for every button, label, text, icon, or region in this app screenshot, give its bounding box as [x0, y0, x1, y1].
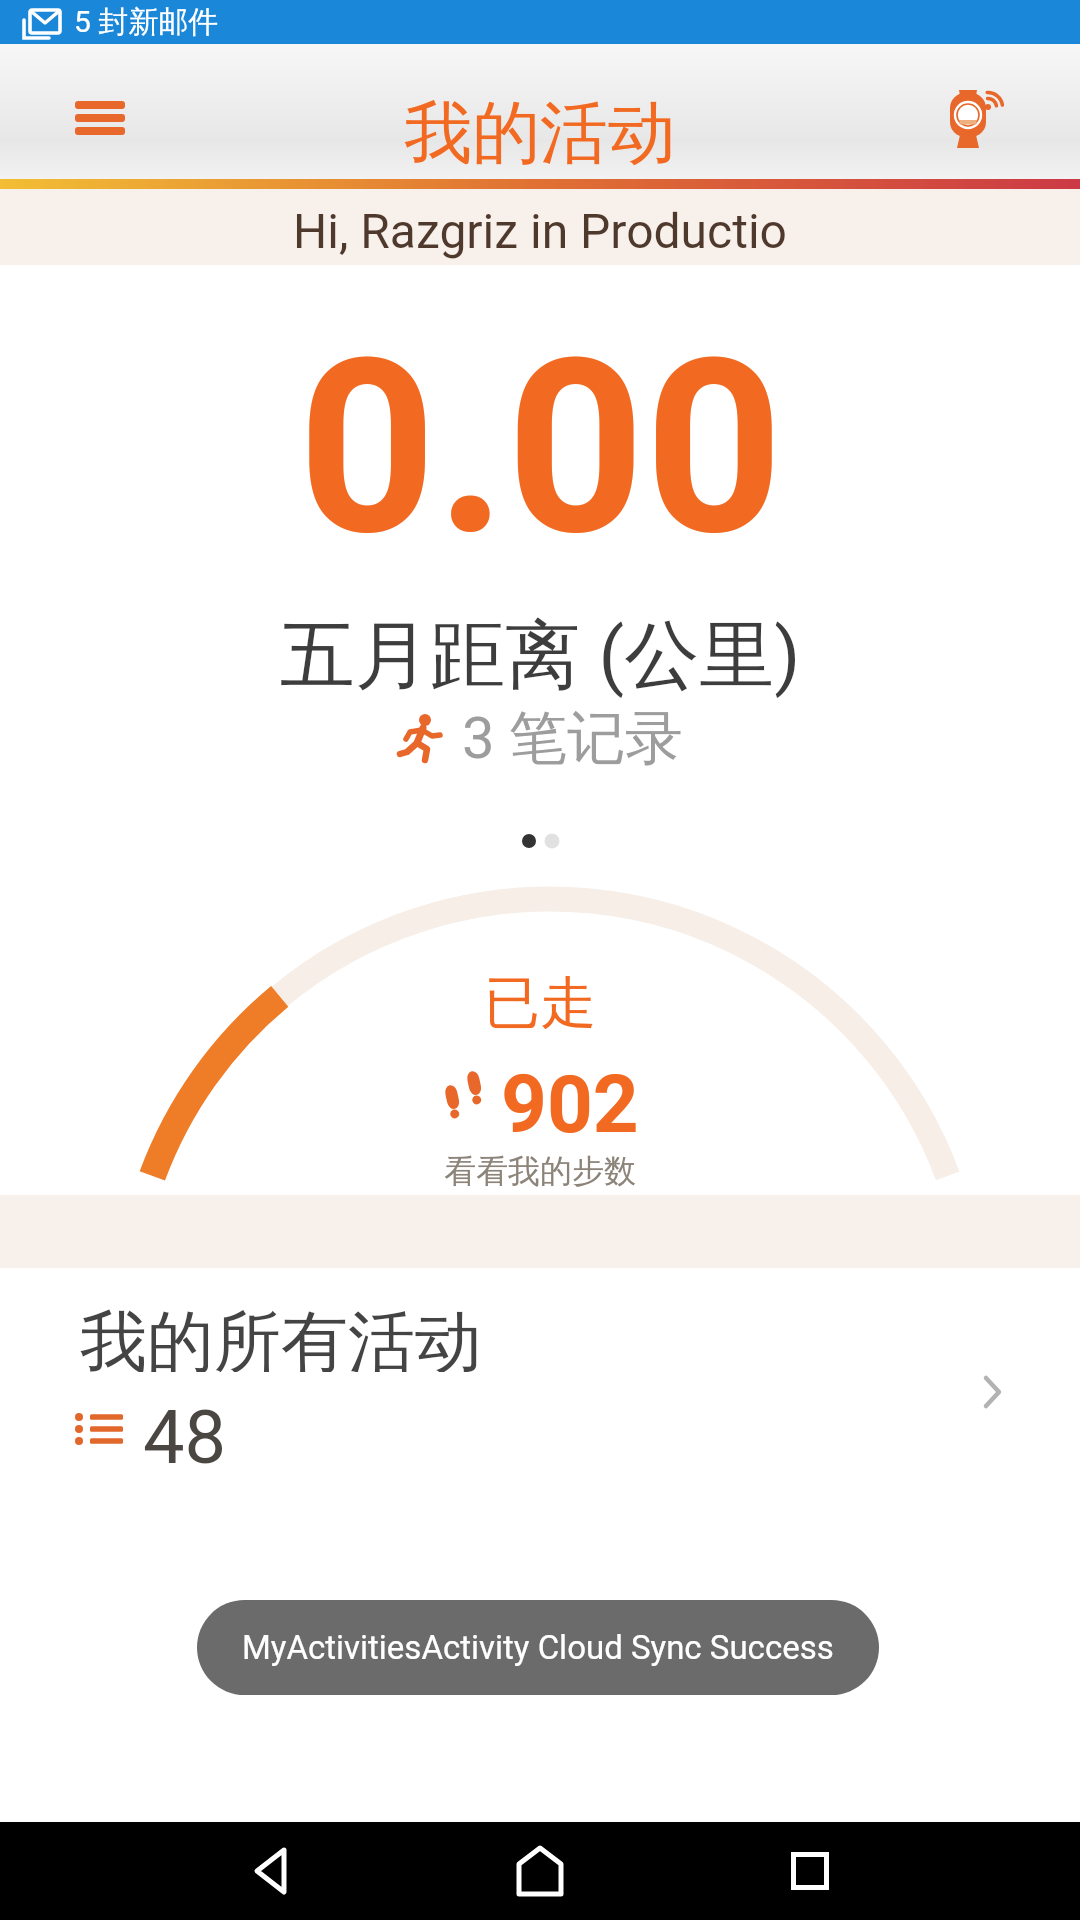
staticText: 5 封新邮件 [74, 3, 219, 41]
staticText: 已走 [484, 968, 596, 1039]
staticText: MyActivitiesActivity Cloud Sync Success [242, 1628, 834, 1667]
staticText: 0.00 [298, 307, 783, 589]
button[interactable] [62, 92, 138, 144]
button[interactable] [216, 1822, 324, 1920]
button[interactable] [486, 1822, 594, 1920]
staticText: 902 [501, 1058, 639, 1142]
staticText: 3 笔记录 [462, 702, 683, 774]
button[interactable] [756, 1822, 864, 1920]
staticText: 五月距离 (公里) [280, 609, 801, 703]
staticText: 我的活动 [404, 91, 676, 177]
button[interactable] [936, 88, 1016, 152]
staticText: 我的所有活动 [80, 1300, 482, 1372]
button[interactable]: 我的所有活动 [0, 1268, 1080, 1498]
staticText: 看看我的步数 [444, 1151, 636, 1191]
staticText: Hi, Razgriz in Productio [293, 203, 787, 259]
staticText: 48 [143, 1394, 227, 1480]
